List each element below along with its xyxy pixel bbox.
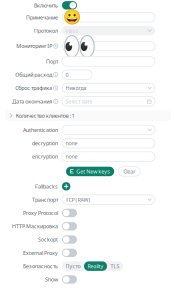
button[interactable]: Никогда — [62, 83, 155, 93]
staticText: External Proxy — [23, 249, 58, 256]
staticText: none — [65, 153, 77, 160]
staticText: Мониторинг IP — [16, 42, 52, 50]
staticText: Sockopt — [38, 236, 58, 243]
button[interactable]: Add fallback — [62, 182, 70, 191]
staticText: Clear — [123, 168, 135, 175]
button[interactable]: vless — [62, 26, 155, 35]
staticText: Пусто — [65, 263, 80, 270]
button[interactable] — [62, 125, 155, 135]
button[interactable] — [62, 13, 155, 22]
button[interactable]: Количество клиентов : 1 — [5, 110, 171, 121]
staticText: TLS — [110, 263, 119, 270]
button[interactable]: Toggle — [62, 209, 77, 217]
staticText: Протокол — [34, 27, 58, 34]
button[interactable]: none — [62, 138, 155, 148]
staticText: vless — [65, 27, 78, 34]
staticText: Включить — [34, 2, 58, 9]
staticText: 0 — [65, 71, 68, 78]
button[interactable]: none — [62, 152, 155, 161]
button[interactable]: Toggle — [62, 275, 77, 284]
button[interactable]: TCP (RAW) — [62, 195, 155, 204]
staticText: HTTP Маскировка — [12, 223, 58, 230]
staticText: Reality — [87, 263, 103, 270]
button[interactable]: 0 — [62, 70, 92, 79]
button[interactable]: Clear — [118, 167, 140, 176]
staticText: Proxy Protocol — [23, 209, 58, 216]
staticText: Безопасность — [23, 263, 58, 270]
staticText: Порт — [46, 58, 58, 65]
staticText: Show — [45, 276, 58, 283]
staticText: Authentication — [23, 126, 58, 133]
button[interactable]: Пусто — [62, 261, 84, 271]
button[interactable] — [62, 41, 155, 51]
staticText: Никогда — [65, 84, 86, 92]
button[interactable]: Toggle — [62, 249, 77, 257]
staticText: Общий расход — [15, 71, 52, 78]
button[interactable]: Toggle — [62, 1, 77, 10]
staticText: Fallbacks — [35, 183, 58, 190]
staticText: none — [65, 140, 77, 147]
button[interactable]: Toggle — [62, 222, 77, 230]
staticText: Количество клиентов : 1 — [16, 112, 75, 119]
button[interactable]: Get New keys — [66, 167, 114, 176]
staticText: Транспорт — [32, 196, 58, 203]
button[interactable]: Toggle — [62, 235, 77, 244]
button[interactable]: Reality — [84, 261, 107, 271]
staticText: Get New keys — [76, 168, 110, 175]
staticText: decryption — [32, 140, 58, 147]
staticText: encryption — [32, 153, 58, 160]
staticText: TCP (RAW) — [65, 196, 90, 203]
staticText: 😀 — [63, 9, 81, 26]
button[interactable]: TLS — [107, 261, 123, 271]
staticText: Select date — [65, 98, 92, 105]
staticText: Дата окончания — [12, 98, 52, 105]
staticText: 👀 — [62, 30, 97, 62]
staticText: Сброс трафика — [15, 84, 52, 92]
staticText: Примечание — [26, 14, 58, 21]
